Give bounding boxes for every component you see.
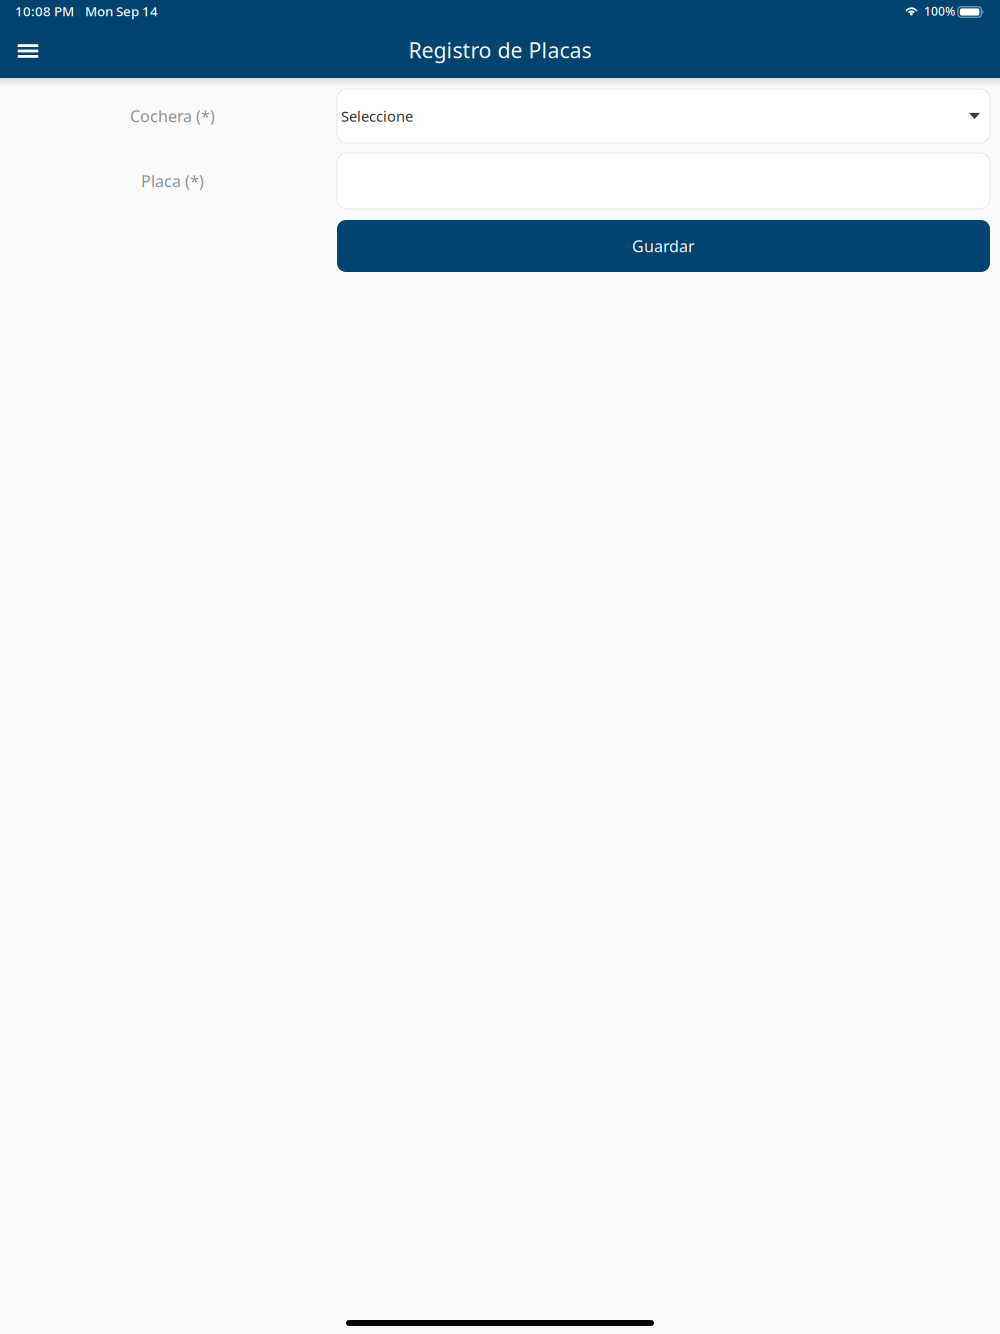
button[interactable]: Cochera, Seleccione [337, 89, 990, 143]
button[interactable]: Menu [6, 29, 50, 75]
staticText: 100% [924, 3, 955, 19]
button[interactable]: Guardar [337, 220, 990, 272]
staticText: 10:08 PM [15, 2, 74, 20]
staticText: Seleccione [341, 106, 413, 126]
staticText: Mon Sep 14 [85, 2, 158, 20]
staticText: Placa (*) [141, 170, 204, 192]
staticText: Cochera (*) [130, 105, 215, 127]
staticText: Guardar [632, 235, 695, 257]
staticText: Registro de Placas [408, 36, 591, 64]
